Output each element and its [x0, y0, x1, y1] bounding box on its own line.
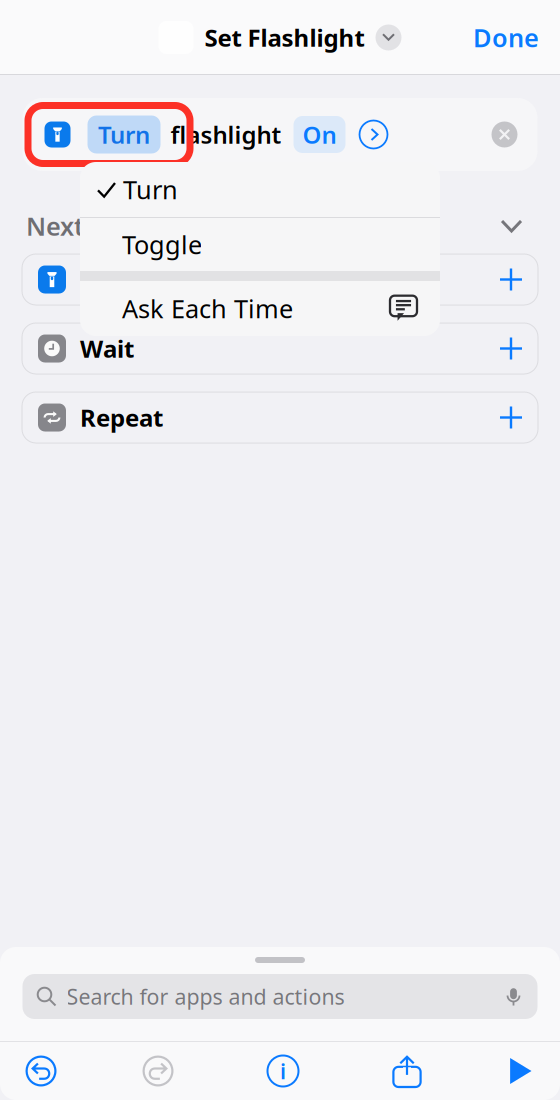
button[interactable]: Repeat	[22, 392, 538, 443]
staticText: On	[302, 119, 336, 150]
staticText: i	[280, 1057, 286, 1085]
button[interactable]: Run	[497, 1048, 543, 1094]
button[interactable]: Turn	[80, 162, 440, 217]
button[interactable]: Redo	[132, 1045, 183, 1096]
button[interactable]: Details	[257, 1045, 308, 1096]
staticText: Ask Each Time	[122, 292, 293, 325]
button[interactable]: Collapse suggestions	[492, 211, 531, 241]
button[interactable]: Turn	[87, 115, 160, 153]
button[interactable]: Toggle	[80, 218, 440, 271]
button[interactable]: Wait	[22, 323, 538, 374]
button[interactable]: On	[293, 116, 345, 153]
button[interactable]: Delete action	[491, 121, 517, 147]
staticText: Search for apps and actions	[66, 982, 344, 1011]
staticText: Wait	[80, 333, 134, 364]
staticText: Done	[473, 21, 539, 54]
button[interactable]: Share	[381, 1045, 433, 1097]
button[interactable]: Show more	[359, 120, 387, 148]
staticText: Turn	[98, 119, 150, 150]
staticText: Repeat	[80, 402, 163, 433]
staticText: Next	[26, 209, 84, 243]
staticText: Toggle	[122, 228, 202, 261]
staticText: Set Flashlight	[80, 264, 240, 295]
button[interactable]: Undo	[15, 1045, 66, 1096]
button[interactable]: Shortcut options	[375, 24, 401, 50]
staticText: Turn	[123, 173, 178, 206]
staticText: flashlight	[170, 119, 281, 150]
button[interactable]: Search for apps and actions	[22, 974, 537, 1019]
button[interactable]: Set Flashlight	[22, 254, 538, 305]
staticText: Set Flashlight	[204, 22, 364, 53]
button[interactable]: Done	[459, 12, 553, 63]
button[interactable]: Ask Each Time	[80, 281, 440, 336]
